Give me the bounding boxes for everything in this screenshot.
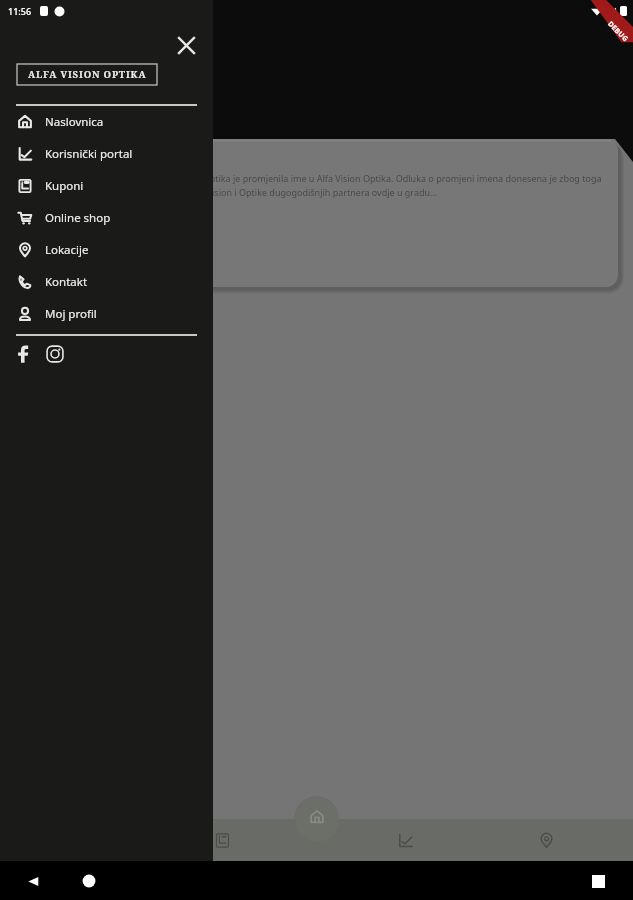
button[interactable]: Stats (391, 826, 419, 854)
button[interactable]: Instagram (46, 345, 64, 363)
button[interactable]: ALFA VISION OPTIKA (17, 64, 157, 85)
button[interactable]: Facebook (17, 345, 35, 363)
staticText: Moj profil (45, 306, 97, 322)
button[interactable]: Back (18, 866, 48, 896)
staticText: Kontakt (45, 274, 88, 290)
button[interactable]: Locations (532, 826, 560, 854)
button[interactable]: Korisnički portal (0, 138, 213, 170)
staticText: ALFA VISION OPTIKA (28, 68, 147, 81)
button[interactable]: Home (74, 866, 104, 896)
staticText: Online shop (45, 210, 111, 226)
button[interactable]: Naslovnica (0, 106, 213, 138)
staticText: Naslovnica (45, 114, 104, 130)
button[interactable]: Online shop (0, 202, 213, 234)
staticText: Lokacije (45, 242, 89, 258)
button[interactable]: Recent apps (583, 866, 613, 896)
button[interactable]: Close menu (172, 31, 200, 59)
button[interactable]: Moj profil (0, 298, 213, 330)
button[interactable]: Nakon punih dvadeset godine Bilić Vision… (14, 139, 618, 287)
button[interactable]: Kontakt (0, 266, 213, 298)
button[interactable]: Kuponi (0, 170, 213, 202)
button[interactable]: Home (295, 798, 339, 842)
button[interactable]: Lokacije (0, 234, 213, 266)
staticText: Korisnički portal (45, 146, 133, 162)
staticText: DEBUG (605, 19, 631, 45)
staticText: 11:56 (8, 5, 32, 17)
staticText: Nakon punih dvadeset godine Bilić Vision… (26, 172, 605, 199)
staticText: Kuponi (45, 178, 84, 194)
button[interactable]: Coupons (208, 826, 236, 854)
